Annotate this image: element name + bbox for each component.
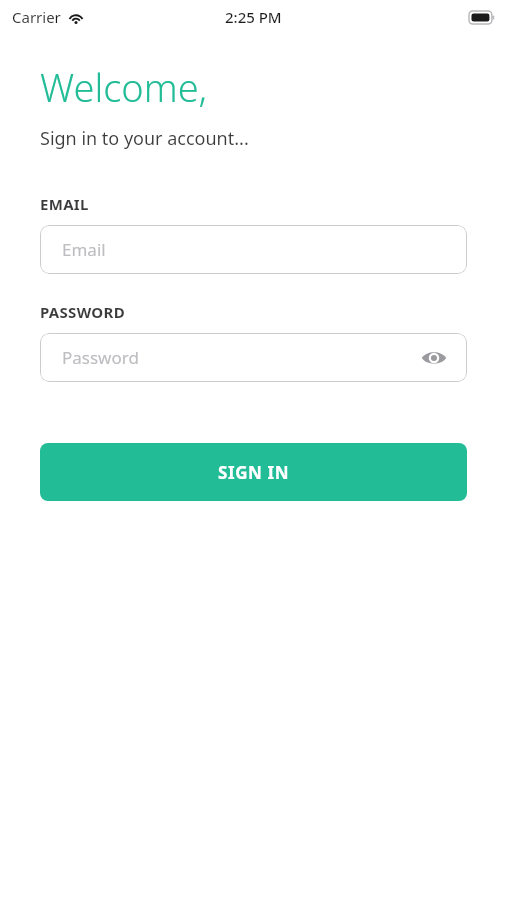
staticText: EMAIL — [40, 194, 89, 214]
staticText: Carrier — [12, 7, 61, 27]
button[interactable]: SIGN IN — [40, 443, 467, 501]
staticText: Password — [62, 346, 419, 369]
button[interactable]: Email — [40, 225, 467, 274]
staticText: 2:25 PM — [225, 7, 282, 27]
button[interactable]: Password — [40, 333, 467, 382]
staticText: Email — [62, 238, 449, 261]
staticText: Welcome, — [40, 61, 208, 113]
staticText: SIGN IN — [218, 461, 290, 484]
staticText: PASSWORD — [40, 302, 125, 322]
staticText: Sign in to your account... — [40, 126, 249, 151]
button[interactable]: Show password — [419, 343, 449, 373]
